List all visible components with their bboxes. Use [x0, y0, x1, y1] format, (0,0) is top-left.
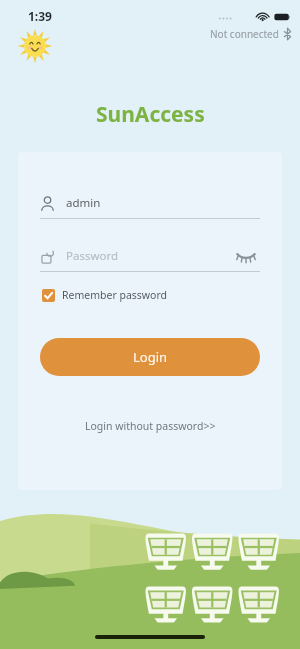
staticText: 1:39 — [28, 8, 52, 24]
staticText: SunAccess — [96, 100, 205, 129]
staticText: Login without password>> — [85, 419, 216, 433]
button[interactable]: Password — [40, 241, 260, 272]
button[interactable]: Remember password — [40, 284, 170, 306]
button[interactable]: Show password — [232, 242, 260, 270]
staticText: Not connected — [210, 27, 279, 41]
staticText: admin — [66, 195, 260, 211]
button[interactable]: User name — [40, 188, 260, 219]
staticText: Login — [133, 348, 168, 366]
staticText: Password — [66, 248, 232, 264]
button[interactable]: Login without password>> — [75, 414, 226, 438]
staticText: Remember password — [62, 288, 168, 302]
button[interactable]: Login — [40, 338, 260, 376]
